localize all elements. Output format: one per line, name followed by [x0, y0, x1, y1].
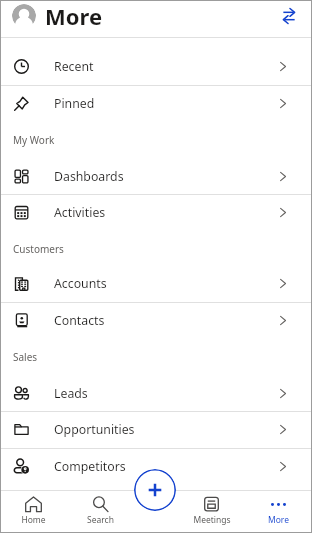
button[interactable]: Pinned: [0, 85, 312, 122]
staticText: Accounts: [54, 275, 107, 292]
staticText: Opportunities: [54, 421, 135, 438]
staticText: Recent: [54, 58, 94, 75]
staticText: Meetings: [193, 514, 231, 526]
staticText: Activities: [54, 204, 106, 221]
button[interactable]: More: [245, 491, 312, 533]
staticText: Home: [21, 514, 46, 526]
button[interactable]: Accounts: [0, 265, 312, 302]
button[interactable]: Leads: [0, 375, 312, 412]
button[interactable]: Competitors: [0, 448, 312, 485]
staticText: Leads: [54, 385, 88, 402]
staticText: More: [45, 1, 103, 31]
staticText: Search: [87, 514, 114, 526]
button[interactable]: Opportunities: [0, 411, 312, 448]
button[interactable]: Create new: [134, 469, 176, 511]
staticText: Contacts: [54, 312, 105, 329]
button[interactable]: Search: [67, 491, 134, 533]
button[interactable]: Home: [0, 491, 67, 533]
staticText: Dashboards: [54, 168, 124, 185]
staticText: More: [268, 514, 289, 526]
button[interactable]: Contacts: [0, 302, 312, 339]
button[interactable]: Recent: [0, 48, 312, 85]
button[interactable]: Activities: [0, 194, 312, 231]
button[interactable]: Account: [12, 4, 36, 28]
staticText: My Work: [13, 133, 55, 147]
staticText: Pinned: [54, 95, 95, 112]
button[interactable]: Dashboards: [0, 158, 312, 195]
staticText: Customers: [13, 242, 64, 256]
staticText: Competitors: [54, 458, 126, 475]
staticText: Sales: [13, 350, 38, 364]
button[interactable]: Meetings: [178, 491, 245, 533]
button[interactable]: Switch app: [277, 6, 301, 30]
